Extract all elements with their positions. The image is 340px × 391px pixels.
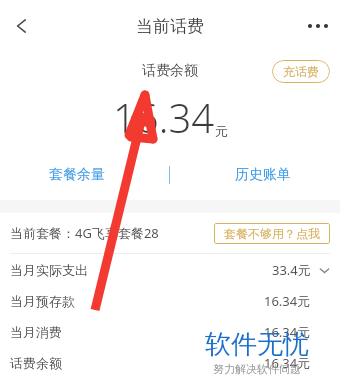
button[interactable]: 当前套餐：4G飞享套餐28 — [0, 213, 340, 253]
staticText: 16.34元 — [264, 354, 311, 372]
staticText: 当月消费 — [10, 324, 62, 340]
staticText: 努力解决软件问题 — [213, 362, 301, 376]
button[interactable]: 当月消费 — [0, 316, 340, 347]
button[interactable]: 历史账单 — [170, 160, 340, 190]
staticText: 话费余额 — [10, 355, 62, 371]
staticText: 套餐不够用？点我 — [224, 226, 320, 241]
staticText: 16.34元 — [264, 292, 311, 310]
staticText: 33.4元 — [272, 261, 311, 279]
staticText: 话费余额 — [142, 62, 198, 80]
button[interactable]: 话费余额 — [0, 347, 340, 378]
button[interactable]: 当月实际支出 — [0, 254, 340, 285]
staticText: 16.34 — [113, 90, 215, 144]
button[interactable]: 套餐余量 — [0, 160, 169, 190]
staticText: 历史账单 — [235, 166, 291, 184]
staticText: 软件无忧 — [205, 328, 309, 361]
staticText: 当月预存款 — [10, 293, 75, 309]
staticText: 当前话费 — [136, 16, 204, 37]
button[interactable]: 当月预存款 — [0, 285, 340, 316]
button[interactable]: Back — [0, 4, 44, 48]
staticText: 充话费 — [283, 64, 319, 79]
staticText: 套餐余量 — [49, 166, 105, 184]
staticText: 当前套餐：4G飞享套餐28 — [10, 224, 159, 242]
staticText: 元 — [215, 123, 228, 139]
button[interactable]: 充话费 — [272, 60, 330, 83]
button[interactable]: More options — [296, 4, 340, 48]
staticText: 当月实际支出 — [10, 262, 88, 278]
button[interactable]: 套餐不够用？点我 — [214, 223, 330, 244]
staticText: 16.34元 — [264, 323, 311, 341]
